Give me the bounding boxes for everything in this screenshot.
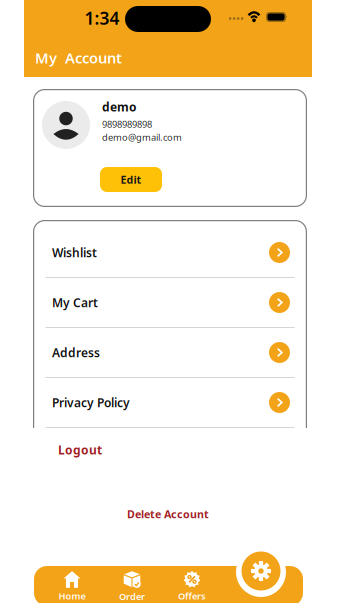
staticText: My Account xyxy=(35,48,122,67)
staticText: Wishlist xyxy=(52,244,97,260)
staticText: Logout xyxy=(58,442,102,458)
staticText: My Cart xyxy=(52,294,98,310)
button[interactable]: Address xyxy=(33,328,307,377)
button[interactable]: Settings xyxy=(241,551,280,590)
staticText: Order xyxy=(119,590,145,603)
button[interactable]: Privacy Policy xyxy=(33,378,307,427)
button[interactable]: Edit xyxy=(100,167,162,192)
staticText: Edit xyxy=(120,172,141,187)
staticText: Home xyxy=(58,590,85,602)
staticText: 9898989898 xyxy=(102,118,152,130)
button[interactable]: Delete Account xyxy=(24,502,312,526)
button[interactable]: Home xyxy=(42,568,102,603)
button[interactable]: Wishlist xyxy=(33,228,307,277)
staticText: 1:34 xyxy=(84,6,119,29)
staticText: Offers xyxy=(178,590,206,602)
staticText: demo xyxy=(102,99,137,115)
button[interactable]: Order xyxy=(102,568,162,603)
staticText: Delete Account xyxy=(127,507,209,521)
button[interactable]: Logout xyxy=(33,428,307,484)
button[interactable]: My Cart xyxy=(33,278,307,327)
button[interactable]: Offers xyxy=(162,568,222,603)
staticText: Privacy Policy xyxy=(52,394,130,410)
staticText: Address xyxy=(52,344,100,360)
staticText: demo@gmail.com xyxy=(102,131,182,143)
